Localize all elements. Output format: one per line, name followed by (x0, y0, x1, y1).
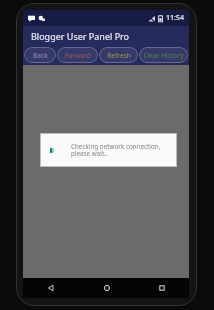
staticText: Refresh (107, 51, 131, 60)
button[interactable]: Home (79, 278, 134, 298)
button[interactable]: Forward (57, 47, 98, 63)
staticText: Forward (65, 51, 91, 60)
staticText: Blogger User Panel Pro (31, 30, 130, 42)
staticText: 11:54 (166, 13, 184, 23)
button[interactable]: Clear History (139, 47, 188, 63)
button[interactable]: Back (23, 278, 79, 298)
staticText: Checking network connection, please wait… (71, 142, 168, 158)
staticText: Clear History (143, 51, 184, 60)
button[interactable]: Refresh (99, 47, 138, 63)
button[interactable]: Recent apps (134, 278, 189, 298)
staticText: Back (33, 51, 48, 60)
button[interactable]: Back (24, 47, 56, 63)
